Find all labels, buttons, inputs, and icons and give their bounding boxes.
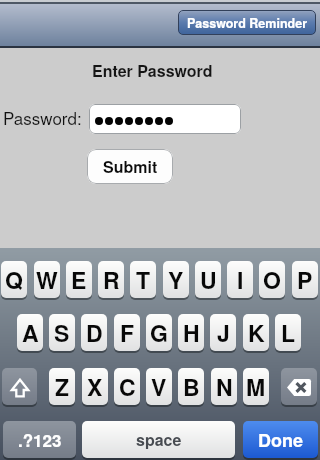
button[interactable]: P: [292, 261, 318, 300]
staticText: Done: [258, 427, 303, 453]
button[interactable]: Submit: [87, 149, 173, 184]
staticText: I: [237, 263, 244, 296]
button[interactable]: .?123: [3, 421, 76, 460]
staticText: Enter Password: [92, 59, 213, 82]
button[interactable]: Y: [163, 261, 189, 300]
button[interactable]: G: [146, 314, 172, 353]
button[interactable]: Backspace: [281, 368, 317, 407]
staticText: Password Reminder: [187, 14, 307, 32]
button[interactable]: H: [178, 314, 204, 353]
staticText: V: [151, 370, 167, 403]
staticText: Password:: [3, 105, 82, 129]
button[interactable]: F: [114, 314, 140, 353]
button[interactable]: U: [195, 261, 221, 300]
staticText: E: [71, 263, 87, 296]
staticText: P: [297, 263, 313, 296]
button[interactable]: D: [81, 314, 107, 353]
staticText: R: [103, 263, 120, 296]
button[interactable]: L: [275, 314, 301, 353]
button[interactable]: S: [49, 314, 75, 353]
button[interactable]: T: [130, 261, 156, 300]
button[interactable]: E: [66, 261, 92, 300]
staticText: Submit: [103, 155, 158, 178]
button[interactable]: W: [34, 261, 60, 300]
staticText: J: [217, 316, 230, 349]
button[interactable]: J: [210, 314, 236, 353]
button[interactable]: Done: [243, 421, 318, 460]
staticText: space: [136, 428, 182, 451]
button[interactable]: Q: [1, 261, 27, 300]
staticText: F: [120, 316, 135, 349]
staticText: A: [22, 316, 39, 349]
staticText: Y: [168, 263, 184, 296]
staticText: B: [183, 370, 200, 403]
button[interactable]: R: [98, 261, 124, 300]
staticText: T: [136, 263, 151, 296]
staticText: C: [119, 370, 136, 403]
staticText: M: [246, 370, 266, 403]
button[interactable]: space: [82, 421, 235, 460]
button[interactable]: B: [178, 368, 204, 407]
button[interactable]: Shift: [2, 368, 37, 407]
staticText: N: [216, 370, 233, 403]
button[interactable]: [89, 104, 241, 134]
staticText: U: [200, 263, 217, 296]
staticText: G: [150, 316, 168, 349]
button[interactable]: Password Reminder: [178, 10, 316, 35]
staticText: W: [36, 263, 58, 296]
staticText: H: [183, 316, 200, 349]
button[interactable]: X: [82, 368, 108, 407]
staticText: .?123: [18, 428, 62, 452]
staticText: K: [248, 316, 265, 349]
button[interactable]: C: [114, 368, 140, 407]
staticText: Z: [55, 370, 70, 403]
button[interactable]: Z: [49, 368, 75, 407]
staticText: S: [54, 316, 70, 349]
button[interactable]: V: [146, 368, 172, 407]
button[interactable]: O: [259, 261, 285, 300]
staticText: D: [86, 316, 103, 349]
staticText: L: [281, 316, 296, 349]
staticText: Q: [5, 263, 23, 296]
button[interactable]: A: [17, 314, 43, 353]
staticText: X: [87, 370, 103, 403]
button[interactable]: I: [227, 261, 253, 300]
button[interactable]: M: [243, 368, 269, 407]
staticText: O: [263, 263, 281, 296]
button[interactable]: K: [243, 314, 269, 353]
button[interactable]: N: [211, 368, 237, 407]
